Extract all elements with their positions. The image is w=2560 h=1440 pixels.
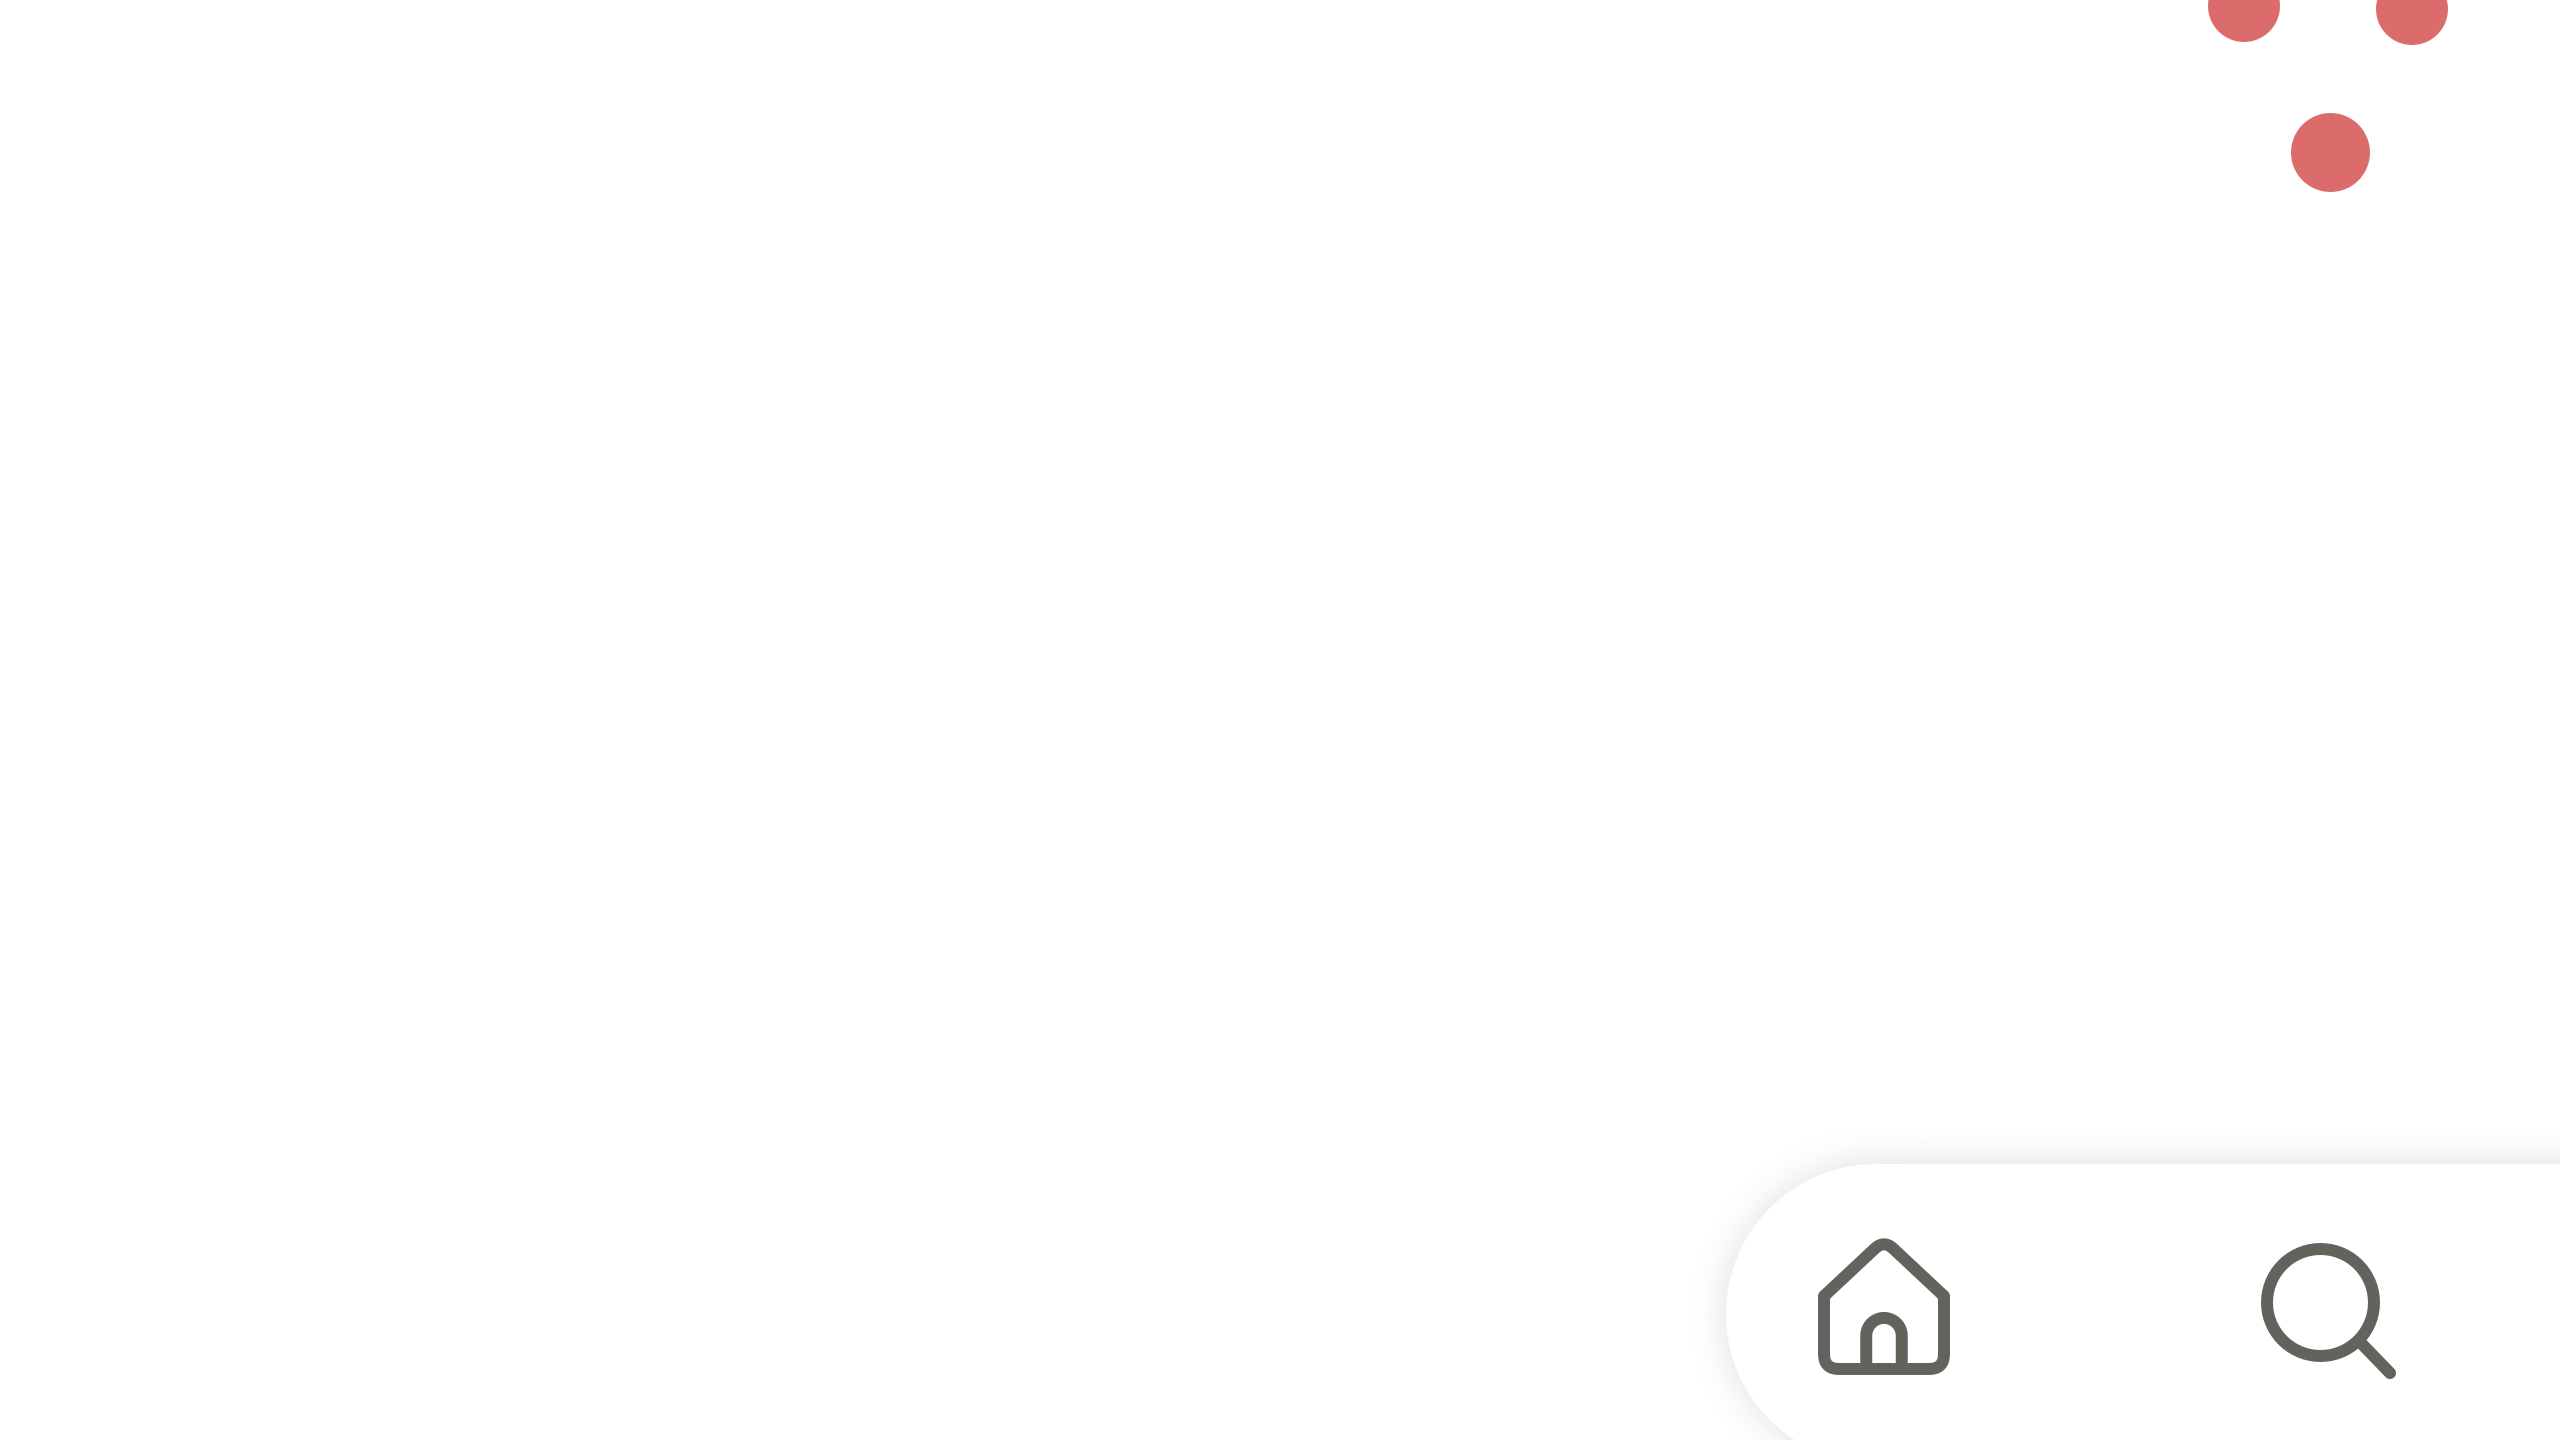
button[interactable]: Home bbox=[1786, 1224, 2026, 1440]
button[interactable]: Search bbox=[2209, 1191, 2449, 1431]
